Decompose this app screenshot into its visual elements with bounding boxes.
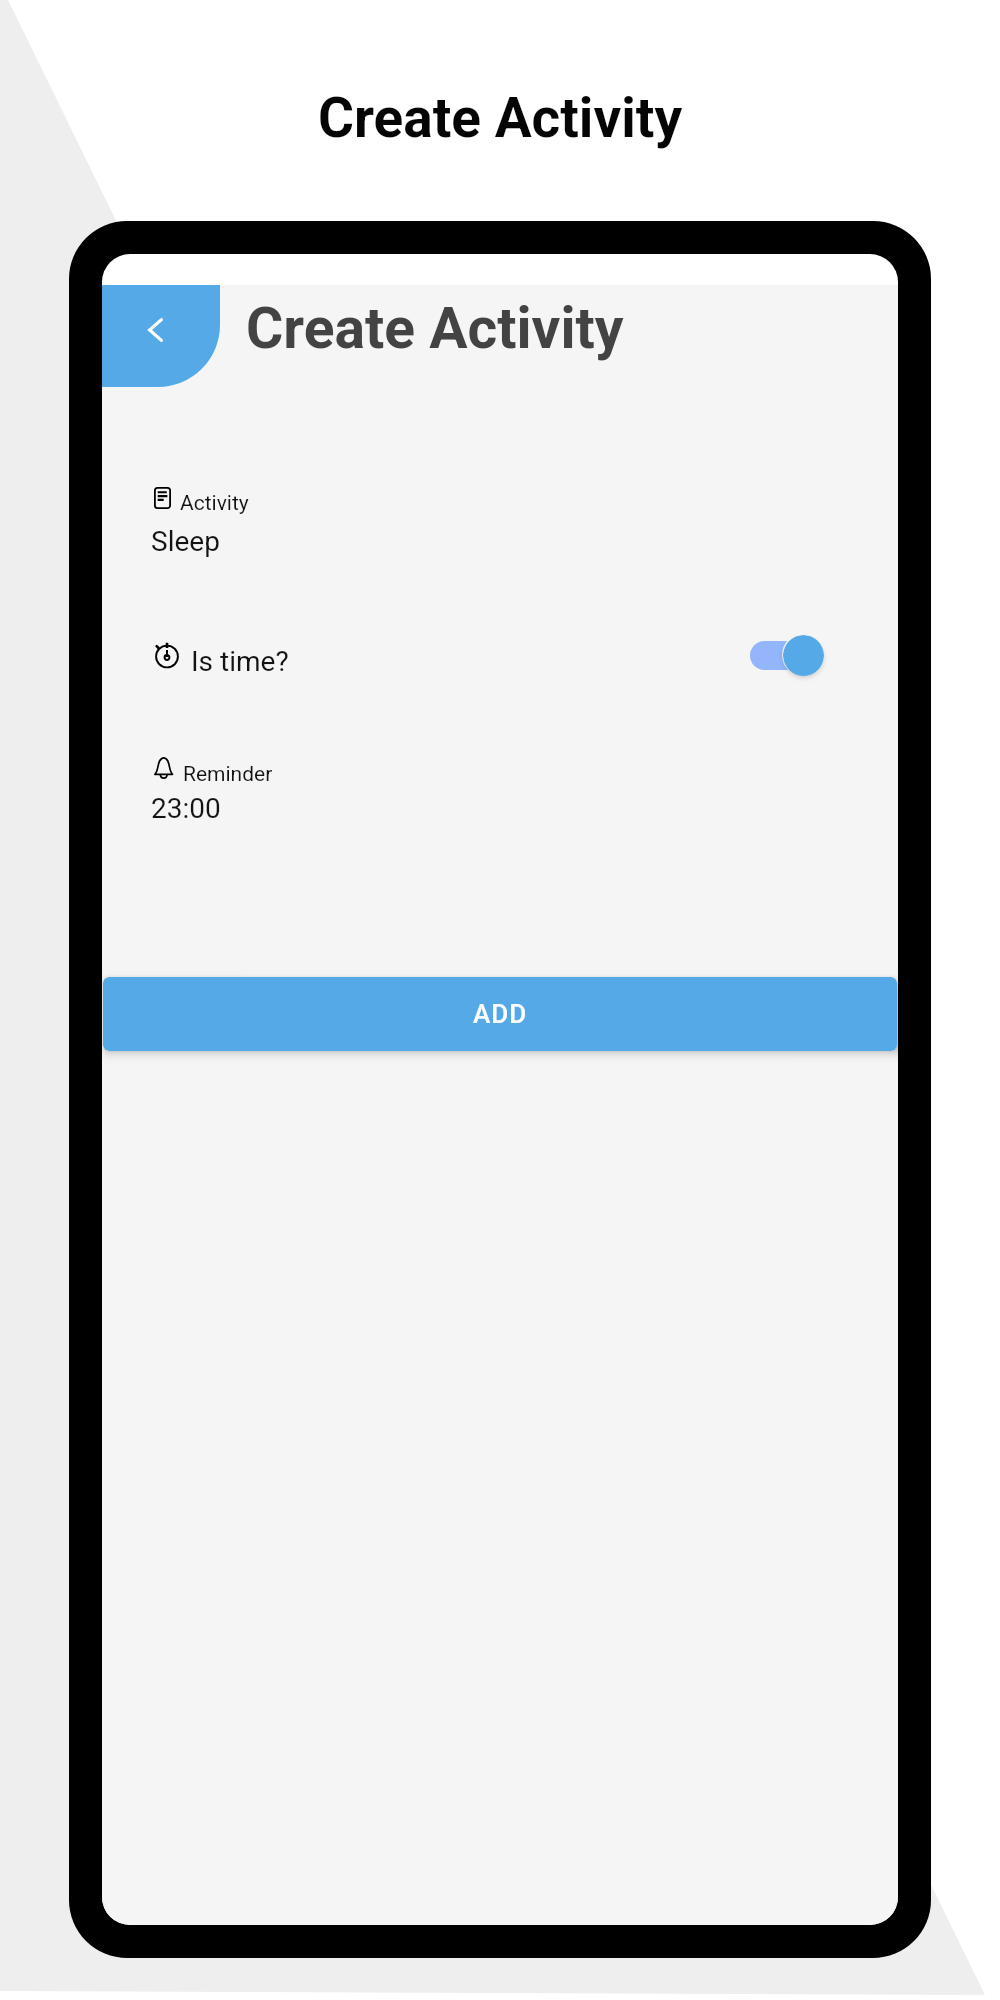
staticText: Reminder [183,762,273,787]
staticText: 23:00 [151,792,221,825]
button[interactable]: Is time, on [750,632,824,678]
staticText: Create Activity [0,86,1000,150]
staticText: Create Activity [246,295,624,362]
button[interactable]: ADD [103,977,897,1051]
staticText: Is time? [191,645,289,678]
button[interactable]: Activity [102,485,898,558]
staticText: Sleep [151,525,220,558]
button[interactable]: Reminder [102,756,898,825]
staticText: ADD [473,999,528,1029]
button[interactable]: Back [102,285,220,387]
staticText: Activity [180,491,249,516]
